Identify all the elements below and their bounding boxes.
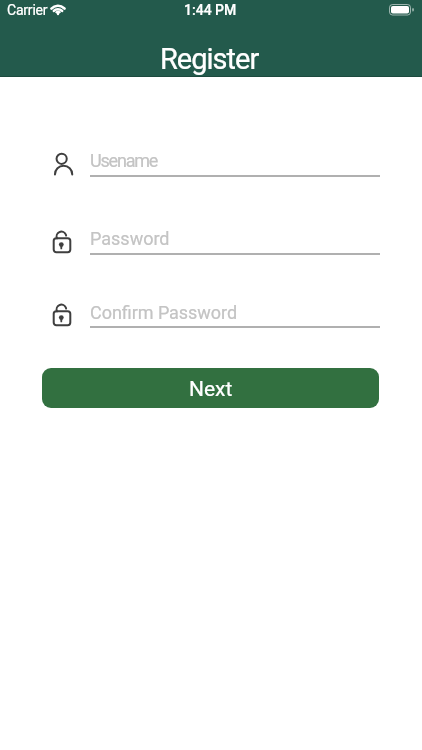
staticText: 1:44 PM: [184, 2, 237, 18]
staticText: Next: [189, 377, 233, 402]
button[interactable]: Next: [42, 368, 379, 408]
staticText: Register: [160, 42, 259, 76]
staticText: Password: [90, 228, 170, 249]
staticText: Carrier: [7, 2, 48, 18]
staticText: Usename: [90, 150, 158, 171]
staticText: Confirm Password: [90, 302, 238, 323]
button[interactable]: Confirm Password: [51, 300, 381, 328]
button[interactable]: Usename: [51, 151, 381, 178]
button[interactable]: Password: [51, 227, 381, 256]
